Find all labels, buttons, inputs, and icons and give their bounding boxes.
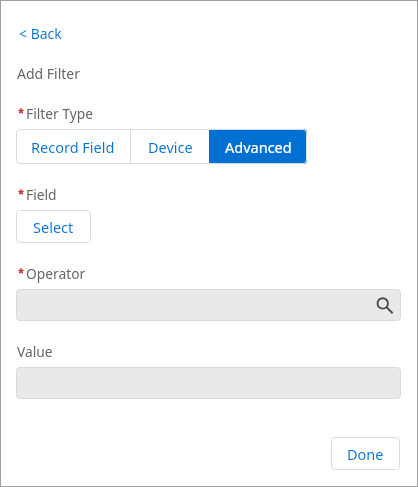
button[interactable]: Done: [331, 437, 400, 470]
staticText: Device: [148, 137, 193, 157]
button[interactable]: < Back: [15, 21, 66, 46]
staticText: Filter Type: [26, 104, 94, 123]
button[interactable]: Record Field: [16, 129, 130, 164]
staticText: Advanced: [225, 137, 292, 157]
button[interactable]: Search operator: [16, 289, 401, 321]
staticText: Add Filter: [17, 64, 81, 83]
staticText: Value: [17, 342, 53, 361]
button[interactable]: Value: [16, 367, 401, 399]
staticText: Record Field: [31, 137, 115, 157]
button[interactable]: Select: [16, 210, 91, 243]
staticText: < Back: [19, 24, 62, 43]
button[interactable]: Advanced: [209, 129, 307, 164]
staticText: Done: [347, 444, 384, 464]
staticText: Operator: [26, 264, 86, 283]
staticText: Field: [26, 185, 57, 204]
button[interactable]: Device: [131, 129, 209, 164]
staticText: Select: [33, 217, 74, 237]
